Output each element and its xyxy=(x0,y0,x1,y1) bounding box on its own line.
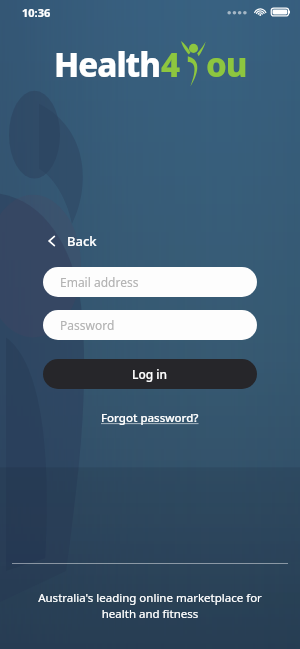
button[interactable]: Email address xyxy=(43,267,257,297)
staticText: Forgot password? xyxy=(101,410,199,426)
staticText: Back xyxy=(67,232,97,250)
staticText: Health xyxy=(54,42,161,87)
button[interactable]: Back xyxy=(40,227,103,255)
staticText: 4 xyxy=(161,42,180,87)
staticText: 10:36 xyxy=(22,5,51,20)
staticText: Australia's leading online marketplace f… xyxy=(14,590,286,621)
staticText: ou xyxy=(206,42,247,87)
staticText: Log in xyxy=(132,366,168,382)
button[interactable]: Forgot password? xyxy=(95,407,205,429)
button[interactable]: Log in xyxy=(43,359,257,389)
staticText: Password xyxy=(60,317,115,333)
button[interactable]: Password xyxy=(43,310,257,340)
staticText: Email address xyxy=(60,274,139,290)
